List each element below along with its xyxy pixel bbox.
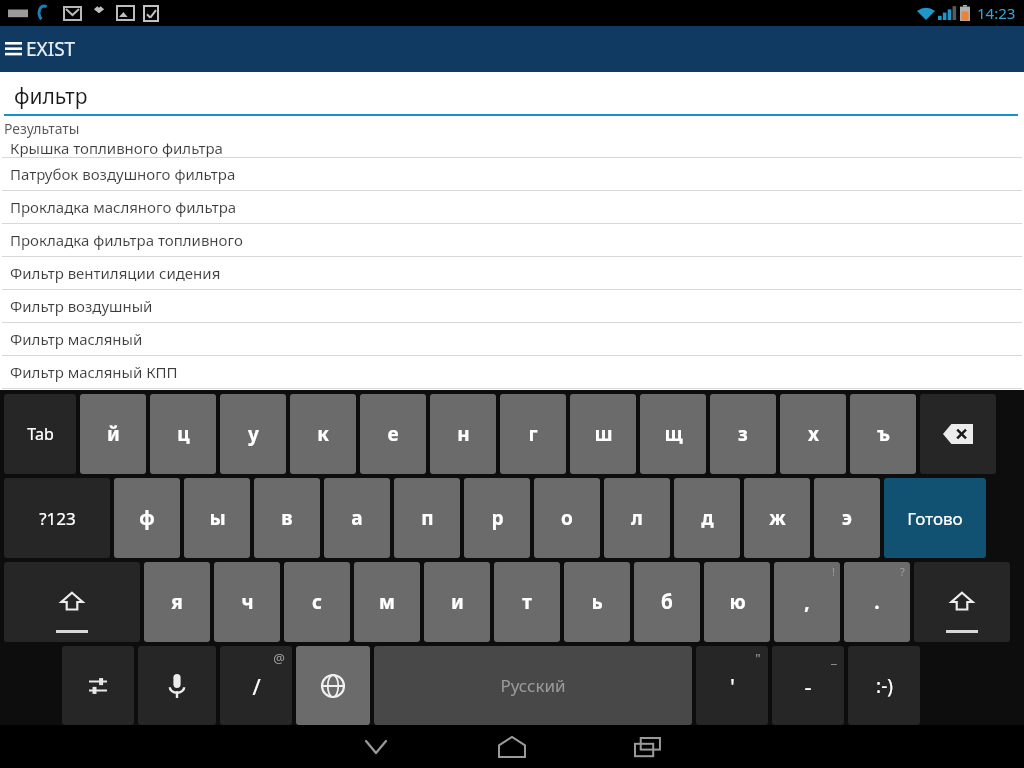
staticText: / xyxy=(252,671,261,701)
staticText: . xyxy=(874,589,880,615)
button[interactable]: Фильтр воздушный xyxy=(0,290,1024,323)
button[interactable]: к xyxy=(290,394,356,474)
staticText: EXIST xyxy=(26,36,76,62)
button[interactable]: у xyxy=(220,394,286,474)
button[interactable]: , xyxy=(774,562,840,642)
button[interactable]: . xyxy=(844,562,910,642)
staticText: й xyxy=(107,421,120,447)
button[interactable]: Voice input xyxy=(138,646,216,725)
staticText: х xyxy=(808,421,819,447)
staticText: в xyxy=(281,505,293,531)
button[interactable]: ж xyxy=(744,478,810,558)
button[interactable]: ф xyxy=(114,478,180,558)
staticText: я xyxy=(171,589,183,615)
button[interactable]: г xyxy=(500,394,566,474)
button[interactable]: Apostrophe xyxy=(696,646,768,725)
button[interactable]: щ xyxy=(640,394,706,474)
staticText: Tab xyxy=(27,423,54,445)
staticText: - xyxy=(804,671,812,701)
button[interactable]: Change language xyxy=(296,646,370,725)
button[interactable]: ы xyxy=(184,478,250,558)
staticText: ы xyxy=(209,505,226,531)
button[interactable]: Патрубок воздушного фильтра xyxy=(0,158,1024,191)
staticText: Прокладка фильтра топливного xyxy=(10,230,243,250)
staticText: с xyxy=(312,589,322,615)
button[interactable]: Home xyxy=(484,727,540,767)
staticText: о xyxy=(561,505,573,531)
button[interactable]: я xyxy=(144,562,210,642)
button[interactable]: Symbols xyxy=(4,478,110,558)
button[interactable]: Space xyxy=(374,646,692,725)
button[interactable]: Backspace xyxy=(920,394,996,474)
staticText: з xyxy=(738,421,748,447)
staticText: Результаты xyxy=(4,119,80,138)
button[interactable]: т xyxy=(494,562,560,642)
staticText: и xyxy=(451,589,464,615)
button[interactable]: ш xyxy=(570,394,636,474)
staticText: _ xyxy=(831,649,837,667)
staticText: ю xyxy=(729,589,746,615)
button[interactable]: Фильтр вентиляции сидения xyxy=(0,257,1024,290)
button[interactable]: ц xyxy=(150,394,216,474)
button[interactable]: з xyxy=(710,394,776,474)
button[interactable]: Done xyxy=(884,478,986,558)
button[interactable]: а xyxy=(324,478,390,558)
button[interactable]: ь xyxy=(564,562,630,642)
button[interactable]: Shift xyxy=(4,562,140,642)
staticText: @ xyxy=(273,649,285,667)
staticText: ь xyxy=(591,589,603,615)
button[interactable]: п xyxy=(394,478,460,558)
staticText: Крышка топливного фильтра xyxy=(10,138,223,157)
staticText: ъ xyxy=(877,421,890,447)
button[interactable]: Hyphen xyxy=(772,646,844,725)
button[interactable]: Прокладка фильтра топливного xyxy=(0,224,1024,257)
button[interactable]: Shift xyxy=(914,562,1010,642)
staticText: ж xyxy=(769,505,786,531)
button[interactable]: в xyxy=(254,478,320,558)
staticText: ! xyxy=(832,564,835,579)
button[interactable]: Recent apps xyxy=(620,727,676,767)
staticText: б xyxy=(661,589,673,615)
button[interactable]: Emoticons xyxy=(848,646,920,725)
staticText: Фильтр масляный КПП xyxy=(10,362,178,382)
button[interactable]: й xyxy=(80,394,146,474)
button[interactable]: х xyxy=(780,394,846,474)
button[interactable]: о xyxy=(534,478,600,558)
button[interactable]: Input settings xyxy=(62,646,134,725)
button[interactable]: ч xyxy=(214,562,280,642)
button[interactable]: р xyxy=(464,478,530,558)
staticText: г xyxy=(528,421,538,447)
button[interactable]: и xyxy=(424,562,490,642)
button[interactable]: Open navigation menu xyxy=(0,26,26,72)
button[interactable]: с xyxy=(284,562,350,642)
button[interactable]: Фильтр масляный КПП xyxy=(0,356,1024,389)
staticText: Фильтр воздушный xyxy=(10,296,153,316)
button[interactable]: е xyxy=(360,394,426,474)
button[interactable]: ъ xyxy=(850,394,916,474)
button[interactable]: Фильтр масляный xyxy=(0,323,1024,356)
staticText: л xyxy=(631,505,643,531)
button[interactable]: э xyxy=(814,478,880,558)
button[interactable]: Крышка топливного фильтра xyxy=(0,138,1024,158)
staticText: т xyxy=(522,589,532,615)
button[interactable]: Tab xyxy=(4,394,76,474)
button[interactable]: Hide keyboard xyxy=(348,727,404,767)
staticText: ч xyxy=(241,589,254,615)
staticText: 14:23 xyxy=(977,3,1016,23)
staticText: ф xyxy=(139,505,155,531)
button[interactable]: б xyxy=(634,562,700,642)
staticText: Готово xyxy=(907,507,963,530)
button[interactable]: ю xyxy=(704,562,770,642)
button[interactable]: Slash xyxy=(220,646,292,725)
staticText: фильтр xyxy=(14,82,88,111)
button[interactable]: л xyxy=(604,478,670,558)
staticText: а xyxy=(351,505,363,531)
button[interactable]: м xyxy=(354,562,420,642)
button[interactable]: д xyxy=(674,478,740,558)
button[interactable]: н xyxy=(430,394,496,474)
button[interactable]: Прокладка масляного фильтра xyxy=(0,191,1024,224)
staticText: ц xyxy=(177,421,190,447)
staticText: э xyxy=(842,505,852,531)
staticText: ' xyxy=(730,671,735,701)
staticText: Русский xyxy=(500,674,566,697)
